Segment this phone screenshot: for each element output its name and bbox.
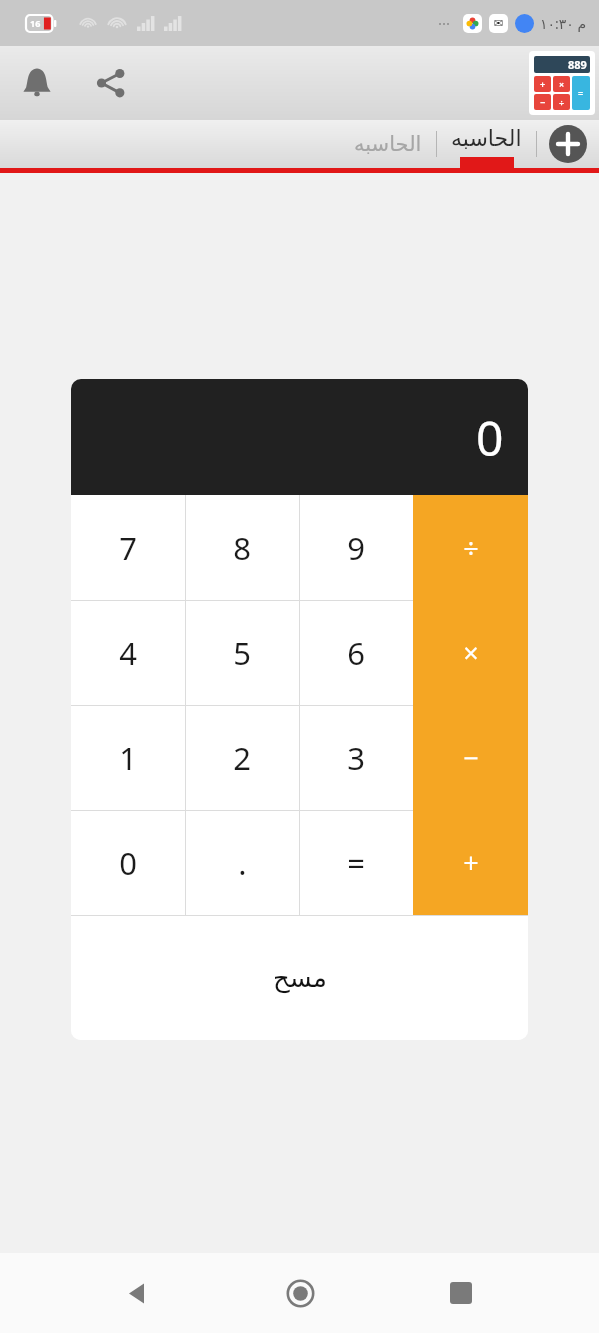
button[interactable]: 0: [71, 810, 185, 915]
button[interactable]: .: [185, 810, 299, 915]
staticText: 1: [119, 737, 137, 779]
staticText: =: [347, 842, 365, 884]
button[interactable]: Add: [549, 120, 587, 168]
staticText: الحاسبه: [354, 132, 422, 156]
button[interactable]: ÷: [413, 495, 528, 600]
staticText: 5: [233, 632, 251, 674]
staticText: .: [238, 842, 247, 884]
button[interactable]: Notifications: [0, 46, 74, 120]
button[interactable]: Home: [272, 1265, 328, 1321]
staticText: ···: [438, 13, 451, 33]
button[interactable]: Back: [110, 1265, 166, 1321]
button[interactable]: −: [413, 705, 528, 810]
button[interactable]: ×: [413, 600, 528, 705]
staticText: 0: [119, 842, 137, 884]
staticText: 2: [233, 737, 251, 779]
staticText: 7: [119, 527, 137, 569]
button[interactable]: 9: [299, 495, 413, 600]
staticText: مسح: [273, 963, 327, 993]
button[interactable]: +: [413, 810, 528, 915]
staticText: الحاسبه: [451, 126, 522, 152]
staticText: +: [463, 844, 479, 881]
button[interactable]: 4: [71, 600, 185, 705]
staticText: 889: [568, 57, 587, 72]
staticText: +: [540, 78, 546, 90]
button[interactable]: 2: [185, 705, 299, 810]
button[interactable]: 8: [185, 495, 299, 600]
staticText: م ١٠:٣٠: [540, 14, 587, 33]
button[interactable]: Recents: [433, 1265, 489, 1321]
staticText: 16: [30, 17, 41, 29]
staticText: −: [540, 96, 546, 108]
button[interactable]: 3: [299, 705, 413, 810]
staticText: ÷: [463, 529, 479, 566]
staticText: −: [463, 739, 479, 776]
staticText: ✉: [494, 17, 504, 30]
staticText: 3: [347, 737, 365, 779]
button[interactable]: الحاسبه: [340, 120, 436, 168]
button[interactable]: 7: [71, 495, 185, 600]
staticText: 8: [233, 527, 251, 569]
staticText: ×: [463, 634, 479, 671]
button[interactable]: مسح: [71, 915, 528, 1040]
button[interactable]: =: [299, 810, 413, 915]
button[interactable]: 1: [71, 705, 185, 810]
staticText: 0: [476, 405, 504, 470]
staticText: ÷: [559, 96, 565, 108]
staticText: 6: [347, 632, 365, 674]
button[interactable]: Calculator widget: [534, 56, 590, 110]
staticText: 9: [347, 527, 365, 569]
staticText: 4: [119, 632, 137, 674]
staticText: =: [578, 87, 584, 99]
button[interactable]: Share: [74, 46, 148, 120]
button[interactable]: 5: [185, 600, 299, 705]
button[interactable]: الحاسبه: [437, 120, 536, 168]
staticText: ×: [559, 78, 565, 90]
button[interactable]: 6: [299, 600, 413, 705]
